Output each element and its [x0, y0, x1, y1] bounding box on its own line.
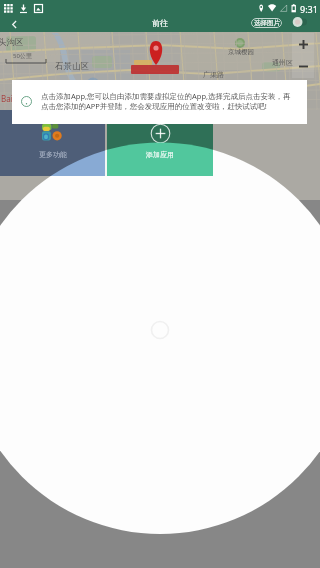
staticText: 9:31 — [300, 3, 318, 15]
staticText: 前往 — [152, 18, 168, 27]
button[interactable]: Zoom out — [292, 55, 314, 78]
button[interactable]: 点击添加App,您可以自由添加需要虚拟定位的App,选择完成后点击安装，再点击您… — [12, 80, 307, 124]
button[interactable]: Toggle location mocking — [291, 16, 311, 28]
staticText: 石景山区 — [55, 61, 89, 72]
staticText: 京城樱园 — [228, 48, 254, 56]
staticText: 点击添加App,您可以自由添加需要虚拟定位的App,选择完成后点击安装，再点击您… — [41, 91, 293, 111]
button[interactable]: Zoom in — [292, 33, 314, 55]
button[interactable] — [107, 110, 213, 176]
staticText: 50公里 — [13, 52, 32, 60]
staticText: 更多功能 — [39, 150, 67, 159]
button[interactable]: Back — [0, 16, 28, 32]
staticText: 选择图片 — [254, 19, 280, 27]
staticText: 通州区 — [272, 58, 293, 67]
staticText: Bai — [1, 93, 13, 104]
staticText: 头沟区 — [0, 37, 24, 48]
button[interactable] — [0, 110, 105, 176]
button[interactable]: 选择图片 — [251, 18, 282, 28]
staticText: 添加应用 — [146, 150, 174, 159]
staticText: 广渠路 — [203, 70, 224, 79]
